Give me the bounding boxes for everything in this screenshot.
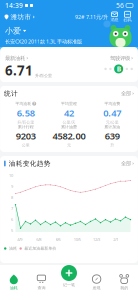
staticText: 6	[11, 217, 13, 222]
button[interactable]: 我的	[110, 265, 138, 300]
staticText: 统计	[4, 89, 18, 98]
staticText: 最新油耗	[5, 55, 25, 61]
staticText: 油耗	[9, 246, 17, 251]
staticText: 14:39	[5, 1, 23, 10]
staticText: 42	[64, 107, 74, 119]
staticText: 10/5	[74, 237, 81, 242]
staticText: 平均油耗	[15, 101, 31, 106]
staticText: 全部	[121, 160, 131, 167]
staticText: 0.47	[103, 107, 121, 119]
staticText: 累计油费	[61, 124, 77, 129]
button[interactable]: 潍坊市	[4, 13, 35, 21]
staticText: 查询	[37, 285, 45, 290]
staticText: 消息	[110, 17, 118, 22]
staticText: 公里	[22, 143, 30, 148]
staticText: 记一笔	[63, 282, 75, 287]
button[interactable]: 消息	[108, 12, 121, 22]
staticText: 扫码	[123, 18, 131, 23]
staticText: 2/1	[113, 237, 118, 242]
button[interactable]: 全部	[121, 160, 134, 167]
staticText: 升	[110, 143, 114, 148]
staticText: 4/9	[17, 237, 22, 242]
staticText: 长安CX20 2011款 1.3L 手动标准版	[5, 38, 82, 45]
staticText: 12/3	[93, 237, 100, 242]
staticText: 最近加油最新单价	[24, 246, 56, 251]
staticText: 639	[105, 130, 120, 142]
staticText: 4582.00	[52, 130, 85, 142]
button[interactable]: 记一笔	[55, 265, 83, 287]
staticText: 我的	[120, 285, 128, 290]
staticText: 全部	[121, 90, 131, 97]
staticText: 6/8	[36, 237, 41, 242]
staticText: 累计加油	[104, 124, 120, 129]
button[interactable]: 最新油耗	[5, 55, 52, 79]
staticText: 小爱	[5, 26, 21, 36]
staticText: 升/百公里	[17, 119, 34, 125]
button[interactable]: 全部	[121, 90, 134, 97]
staticText: 10	[9, 173, 13, 178]
staticText: 升/百公里	[35, 73, 52, 78]
button[interactable]: 发现	[83, 265, 110, 300]
staticText: 92# 7.11元/升	[75, 13, 108, 21]
button[interactable]: 查询	[28, 265, 55, 300]
staticText: 6.58	[17, 107, 35, 119]
staticText: 公里/天	[62, 119, 75, 125]
button[interactable]: 扫码	[121, 11, 134, 23]
staticText: 平均油费	[104, 101, 120, 106]
staticText: 6.71	[5, 61, 33, 79]
staticText: 56	[116, 1, 124, 10]
staticText: 9	[11, 184, 13, 189]
staticText: 5	[11, 228, 13, 233]
staticText: B	[117, 64, 121, 73]
staticText: 元	[67, 143, 71, 148]
staticText: 7	[11, 206, 13, 211]
staticText: 驾驶评级	[110, 55, 130, 61]
button[interactable]: 驾驶评级	[104, 55, 133, 73]
staticText: 潍坊市	[10, 13, 31, 21]
staticText: 元/公里	[106, 119, 119, 125]
staticText: ?	[33, 101, 35, 106]
staticText: 8/6	[56, 237, 61, 242]
staticText: 发现	[93, 285, 101, 290]
button[interactable]: 小爱	[5, 26, 26, 36]
staticText: 8	[11, 195, 13, 200]
staticText: 油耗变化趋势	[9, 159, 51, 168]
button[interactable]: 油耗	[0, 265, 28, 300]
staticText: 累计行程	[18, 124, 34, 129]
staticText: 油耗	[10, 285, 18, 290]
staticText: 平均里程	[61, 101, 77, 106]
staticText: 9203	[16, 130, 36, 142]
